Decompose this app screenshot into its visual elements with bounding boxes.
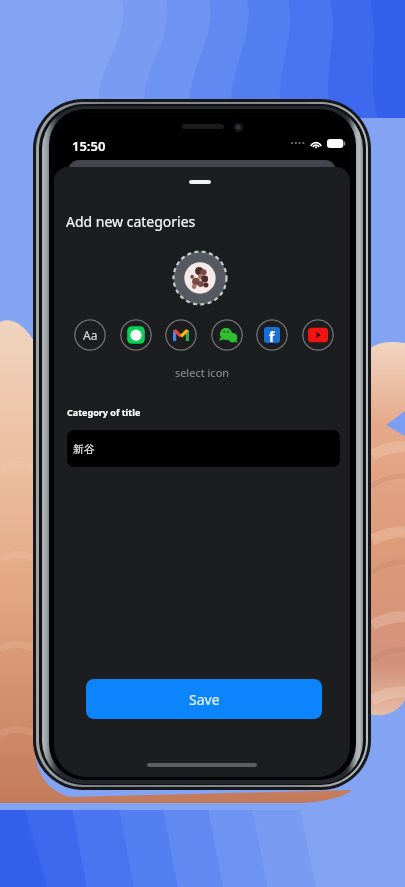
- button[interactable]: Text icon: [74, 319, 106, 351]
- button[interactable]: 新谷: [67, 430, 340, 467]
- button[interactable]: Save: [86, 679, 322, 719]
- staticText: 新谷: [73, 442, 95, 456]
- staticText: f: [269, 327, 275, 346]
- staticText: Save: [189, 690, 220, 709]
- button[interactable]: Gmail: [165, 319, 197, 351]
- staticText: Add new categories: [66, 212, 196, 231]
- button[interactable]: YouTube: [302, 319, 334, 351]
- button[interactable]: Choose avatar: [172, 250, 228, 306]
- staticText: select icon: [54, 365, 350, 380]
- staticText: Category of title: [67, 406, 141, 418]
- staticText: 15:50: [72, 137, 106, 155]
- staticText: Aa: [83, 327, 98, 343]
- button[interactable]: LINE: [120, 319, 152, 351]
- button[interactable]: WeChat: [211, 319, 243, 351]
- button[interactable]: Facebook: [256, 319, 288, 351]
